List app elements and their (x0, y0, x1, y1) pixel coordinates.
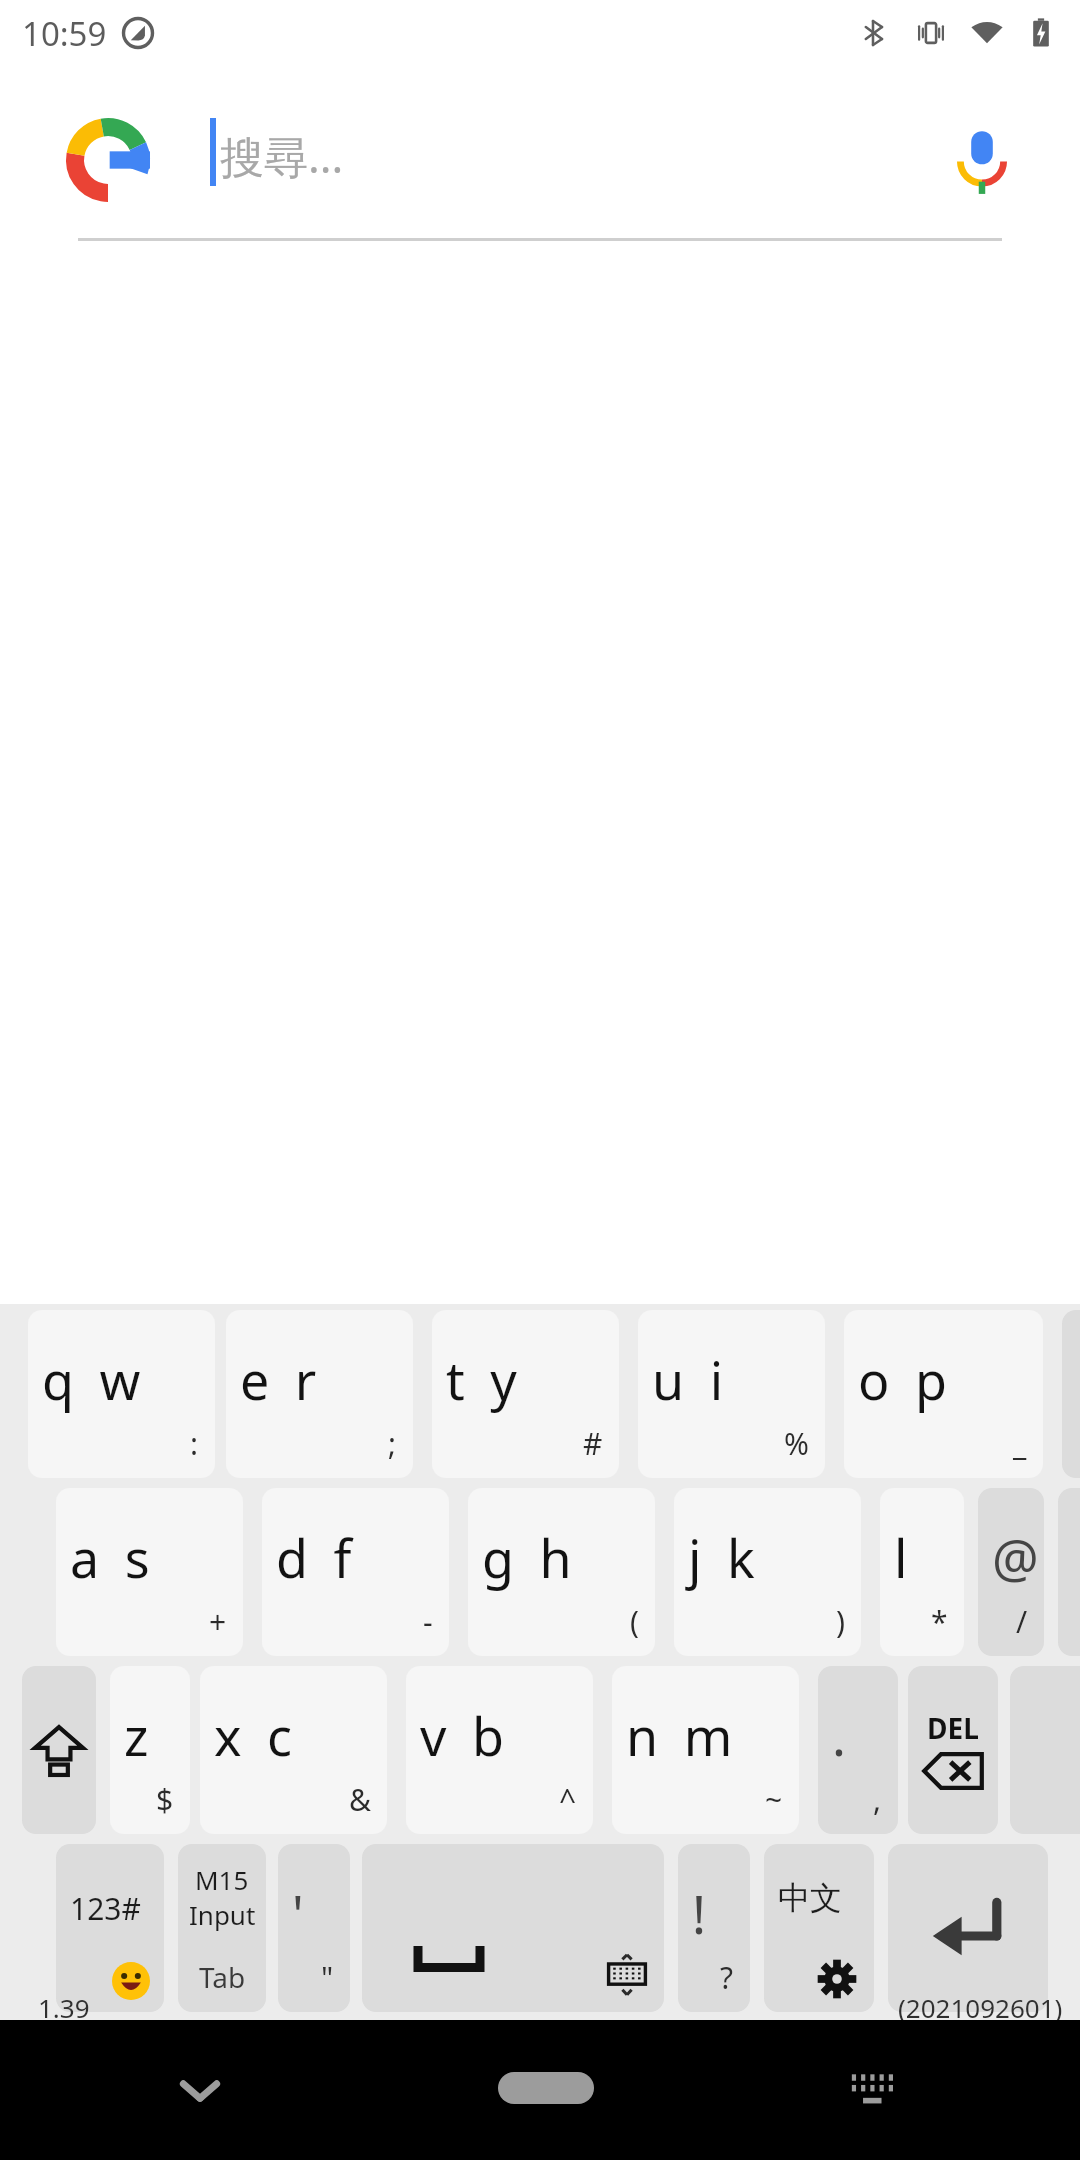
button[interactable]: d f (262, 1488, 449, 1656)
staticText: t y (446, 1344, 523, 1415)
button[interactable]: n m (612, 1666, 799, 1834)
button[interactable]: Space (362, 1844, 664, 2012)
button[interactable]: . (818, 1666, 898, 1834)
staticText: z (124, 1700, 155, 1771)
staticText: l (894, 1522, 914, 1593)
staticText: # (583, 1423, 603, 1464)
staticText: ) (836, 1601, 845, 1642)
staticText: ~ (765, 1779, 783, 1820)
staticText: 10:59 (22, 11, 107, 56)
staticText: x c (214, 1700, 298, 1771)
staticText: + (209, 1601, 227, 1642)
staticText: / (1016, 1601, 1028, 1642)
button[interactable]: @ (978, 1488, 1044, 1656)
staticText: d f (276, 1522, 358, 1593)
staticText: & (349, 1779, 371, 1820)
staticText: a s (70, 1522, 156, 1593)
staticText: Tab (199, 1958, 246, 1996)
staticText: ' (292, 1878, 310, 1949)
staticText: e r (240, 1344, 323, 1415)
button[interactable]: 中文 (764, 1844, 874, 2012)
button[interactable]: a s (56, 1488, 243, 1656)
button[interactable]: l (880, 1488, 964, 1656)
staticText: q w (42, 1344, 147, 1415)
button[interactable]: Delete (908, 1666, 998, 1834)
staticText: j k (688, 1522, 761, 1593)
button[interactable]: q w (28, 1310, 215, 1478)
button[interactable]: v b (406, 1666, 593, 1834)
staticText: , (873, 1779, 882, 1820)
staticText: g h (482, 1522, 578, 1593)
staticText: v b (420, 1700, 510, 1771)
staticText: ! (692, 1878, 712, 1949)
button[interactable]: j k (674, 1488, 861, 1656)
button[interactable]: Shift (22, 1666, 96, 1834)
staticText: ; (388, 1423, 397, 1464)
button[interactable]: u i (638, 1310, 825, 1478)
staticText: DEL (927, 1709, 979, 1747)
button[interactable]: Hide keyboard (160, 2050, 240, 2130)
staticText: (2021092601) (898, 1990, 1063, 2025)
button[interactable]: Enter (888, 1844, 1048, 2012)
staticText: . (832, 1700, 852, 1771)
staticText: % (784, 1423, 809, 1464)
button[interactable]: ! (678, 1844, 750, 2012)
button[interactable]: x c (200, 1666, 387, 1834)
staticText: : (190, 1423, 199, 1464)
button[interactable]: 搜尋... (210, 66, 910, 246)
button[interactable]: 123# (56, 1844, 164, 2012)
staticText: ? (720, 1957, 734, 1998)
staticText: * (931, 1601, 948, 1642)
staticText: ^ (559, 1779, 577, 1820)
button[interactable]: t y (432, 1310, 619, 1478)
staticText: Input (189, 1897, 256, 1932)
button[interactable]: Home (498, 2072, 594, 2104)
button[interactable]: e r (226, 1310, 413, 1478)
button[interactable]: Google (66, 118, 150, 202)
button[interactable]: Switch keyboard (830, 2048, 914, 2132)
staticText: - (423, 1601, 433, 1642)
button[interactable]: ' (278, 1844, 350, 2012)
button[interactable]: M15 (178, 1844, 266, 2012)
staticText: 1.39 (38, 1990, 90, 2025)
staticText: ( (630, 1601, 639, 1642)
staticText: $ (156, 1779, 174, 1820)
staticText: M15 (195, 1862, 249, 1897)
staticText: n m (626, 1700, 739, 1771)
button[interactable]: z (110, 1666, 190, 1834)
staticText: o p (858, 1344, 953, 1415)
staticText: u i (652, 1344, 730, 1415)
staticText: 中文 (778, 1878, 842, 1918)
button[interactable]: Voice search (946, 124, 1018, 196)
staticText: 搜尋... (220, 126, 344, 186)
staticText: " (321, 1957, 334, 1998)
staticText: @ (992, 1522, 1044, 1593)
staticText: 123# (70, 1888, 141, 1929)
staticText: _ (1013, 1423, 1027, 1464)
button[interactable]: o p (844, 1310, 1043, 1478)
button[interactable]: g h (468, 1488, 655, 1656)
